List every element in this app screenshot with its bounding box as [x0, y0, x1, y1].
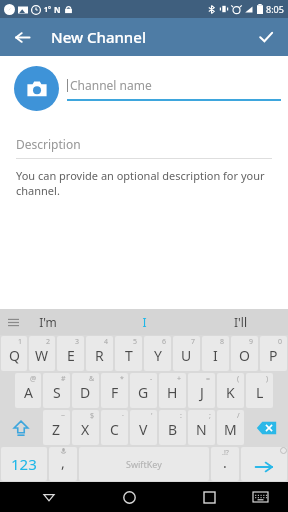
button[interactable]: R [86, 336, 113, 371]
button[interactable]: K [217, 373, 244, 408]
button[interactable]: I [96, 309, 192, 335]
button[interactable]: L [246, 373, 273, 408]
button[interactable]: V [130, 410, 157, 445]
staticText: 7 [191, 337, 196, 347]
button[interactable]: Switch keyboard [245, 482, 275, 512]
staticText: F [111, 383, 119, 402]
staticText: U [181, 346, 192, 365]
staticText: 8:05 [266, 3, 284, 15]
staticText: · [122, 411, 124, 421]
staticText: Description [16, 136, 81, 152]
staticText: 2 [46, 337, 51, 347]
staticText: 123 [11, 454, 37, 474]
staticText: K [226, 383, 235, 402]
button[interactable]: M [217, 410, 244, 445]
staticText: L [256, 383, 264, 402]
button[interactable]: . [211, 447, 239, 481]
button[interactable]: Home [114, 482, 144, 512]
staticText: I'm [39, 314, 57, 330]
staticText: 5 [133, 337, 138, 347]
button[interactable]: A [15, 373, 41, 408]
staticText: 8 [220, 337, 225, 347]
staticText: You can provide an optional description … [16, 168, 265, 198]
button[interactable]: T [115, 336, 142, 371]
staticText: J [200, 383, 204, 402]
staticText: 4 [104, 337, 109, 347]
button[interactable]: C [101, 410, 128, 445]
staticText: New Channel [51, 27, 146, 47]
button[interactable]: D [72, 373, 99, 408]
button[interactable]: G [130, 373, 157, 408]
staticText: ( [237, 374, 240, 384]
staticText: ' [151, 411, 153, 421]
staticText: D [80, 383, 91, 402]
staticText: = [206, 374, 211, 384]
staticText: # [61, 374, 66, 384]
staticText: ) [266, 374, 269, 384]
button[interactable]: S [43, 373, 70, 408]
button[interactable]: Done [250, 21, 282, 53]
button[interactable]: B [159, 410, 186, 445]
staticText: C [110, 420, 119, 439]
staticText: T [125, 346, 133, 365]
staticText: Channel name [70, 77, 152, 93]
button[interactable]: X [72, 410, 99, 445]
button[interactable]: Shift [1, 410, 41, 445]
staticText: ; [209, 411, 211, 421]
button[interactable]: , [49, 447, 77, 481]
staticText: SwiftKey [126, 458, 162, 470]
button[interactable]: Keyboard menu [2, 311, 24, 333]
button[interactable]: Space [79, 447, 209, 481]
staticText: W [35, 346, 49, 365]
staticText: 1 [18, 337, 23, 347]
staticText: * [120, 374, 124, 384]
button[interactable]: P [260, 336, 287, 371]
staticText: O [239, 346, 250, 365]
staticText: & [89, 374, 95, 384]
staticText: I [213, 346, 218, 365]
button[interactable]: I'm [0, 309, 96, 335]
staticText: N [196, 420, 207, 439]
staticText: R [95, 346, 104, 365]
staticText: V [139, 420, 148, 439]
staticText: 9 [249, 337, 254, 347]
staticText: M [224, 420, 237, 439]
button[interactable]: N [188, 410, 215, 445]
button[interactable]: Backspace [246, 410, 287, 445]
button[interactable]: Q [1, 336, 27, 371]
button[interactable]: I'll [192, 309, 288, 335]
staticText: @ [30, 374, 37, 384]
button[interactable]: Set channel photo [14, 66, 59, 111]
staticText: , [61, 453, 65, 472]
button[interactable]: Recent apps [194, 482, 224, 512]
staticText: Q [9, 346, 20, 365]
staticText: $ [90, 411, 95, 421]
staticText: A [24, 383, 33, 402]
staticText: P [269, 346, 278, 365]
button[interactable]: W [29, 336, 55, 371]
staticText: 3 [75, 337, 80, 347]
button[interactable]: U [173, 336, 200, 371]
staticText: G [138, 383, 149, 402]
button[interactable]: Back [6, 21, 38, 53]
button[interactable]: F [101, 373, 128, 408]
button[interactable]: H [159, 373, 186, 408]
staticText: B [168, 420, 178, 439]
button[interactable]: O [231, 336, 258, 371]
staticText: H [167, 383, 178, 402]
button[interactable]: Z [43, 410, 70, 445]
button[interactable]: Y [144, 336, 171, 371]
staticText: Y [154, 346, 162, 365]
staticText: 0 [278, 337, 283, 347]
staticText: 1° [44, 5, 51, 15]
button[interactable]: I [202, 336, 229, 371]
button[interactable]: E [57, 336, 84, 371]
button[interactable]: Enter [241, 447, 287, 481]
button[interactable]: Back [34, 482, 64, 512]
staticText: - [150, 374, 153, 384]
staticText: : [180, 411, 182, 421]
staticText: N [54, 4, 61, 15]
button[interactable]: 123 [1, 447, 47, 481]
staticText: . [223, 453, 227, 472]
button[interactable]: J [188, 373, 215, 408]
